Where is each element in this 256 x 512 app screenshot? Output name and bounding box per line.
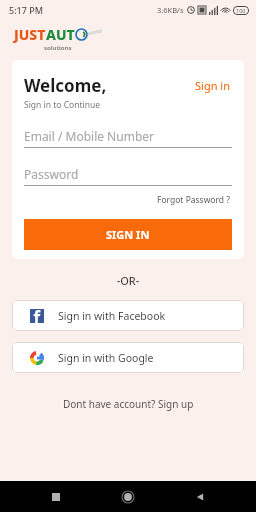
staticText: Sign in with Facebook xyxy=(58,309,166,323)
staticText: 100 xyxy=(236,7,246,14)
staticText: Email / Mobile Number xyxy=(24,128,154,144)
staticText: solutions xyxy=(44,44,72,52)
staticText: Dont have account? Sign up xyxy=(63,397,194,411)
button[interactable]: Sign in with Facebook xyxy=(12,300,244,331)
staticText: Sign in to Continue xyxy=(24,99,100,111)
button[interactable]: Recent apps xyxy=(44,485,68,509)
button[interactable]: SIGN IN xyxy=(24,219,232,250)
staticText: Welcome, xyxy=(24,74,107,97)
staticText: AUT xyxy=(46,25,75,44)
button[interactable]: Sign in with Google xyxy=(12,342,244,373)
staticText: 5:17 PM xyxy=(9,4,43,16)
staticText: JUST xyxy=(14,25,46,44)
staticText: Password xyxy=(24,166,79,182)
button[interactable]: Back xyxy=(188,485,212,509)
staticText: Sign in xyxy=(195,78,230,93)
staticText: 3.6KB/s xyxy=(157,5,184,15)
staticText: Forgot Password ? xyxy=(157,194,230,206)
button[interactable]: Dont have account? Sign up xyxy=(63,397,194,411)
staticText: -OR- xyxy=(0,273,256,288)
staticText: Sign in with Google xyxy=(58,351,154,365)
button[interactable]: Forgot Password ? xyxy=(155,192,232,208)
staticText: SIGN IN xyxy=(106,227,150,242)
button[interactable]: Home xyxy=(116,485,140,509)
button[interactable]: Sign in xyxy=(193,76,232,95)
